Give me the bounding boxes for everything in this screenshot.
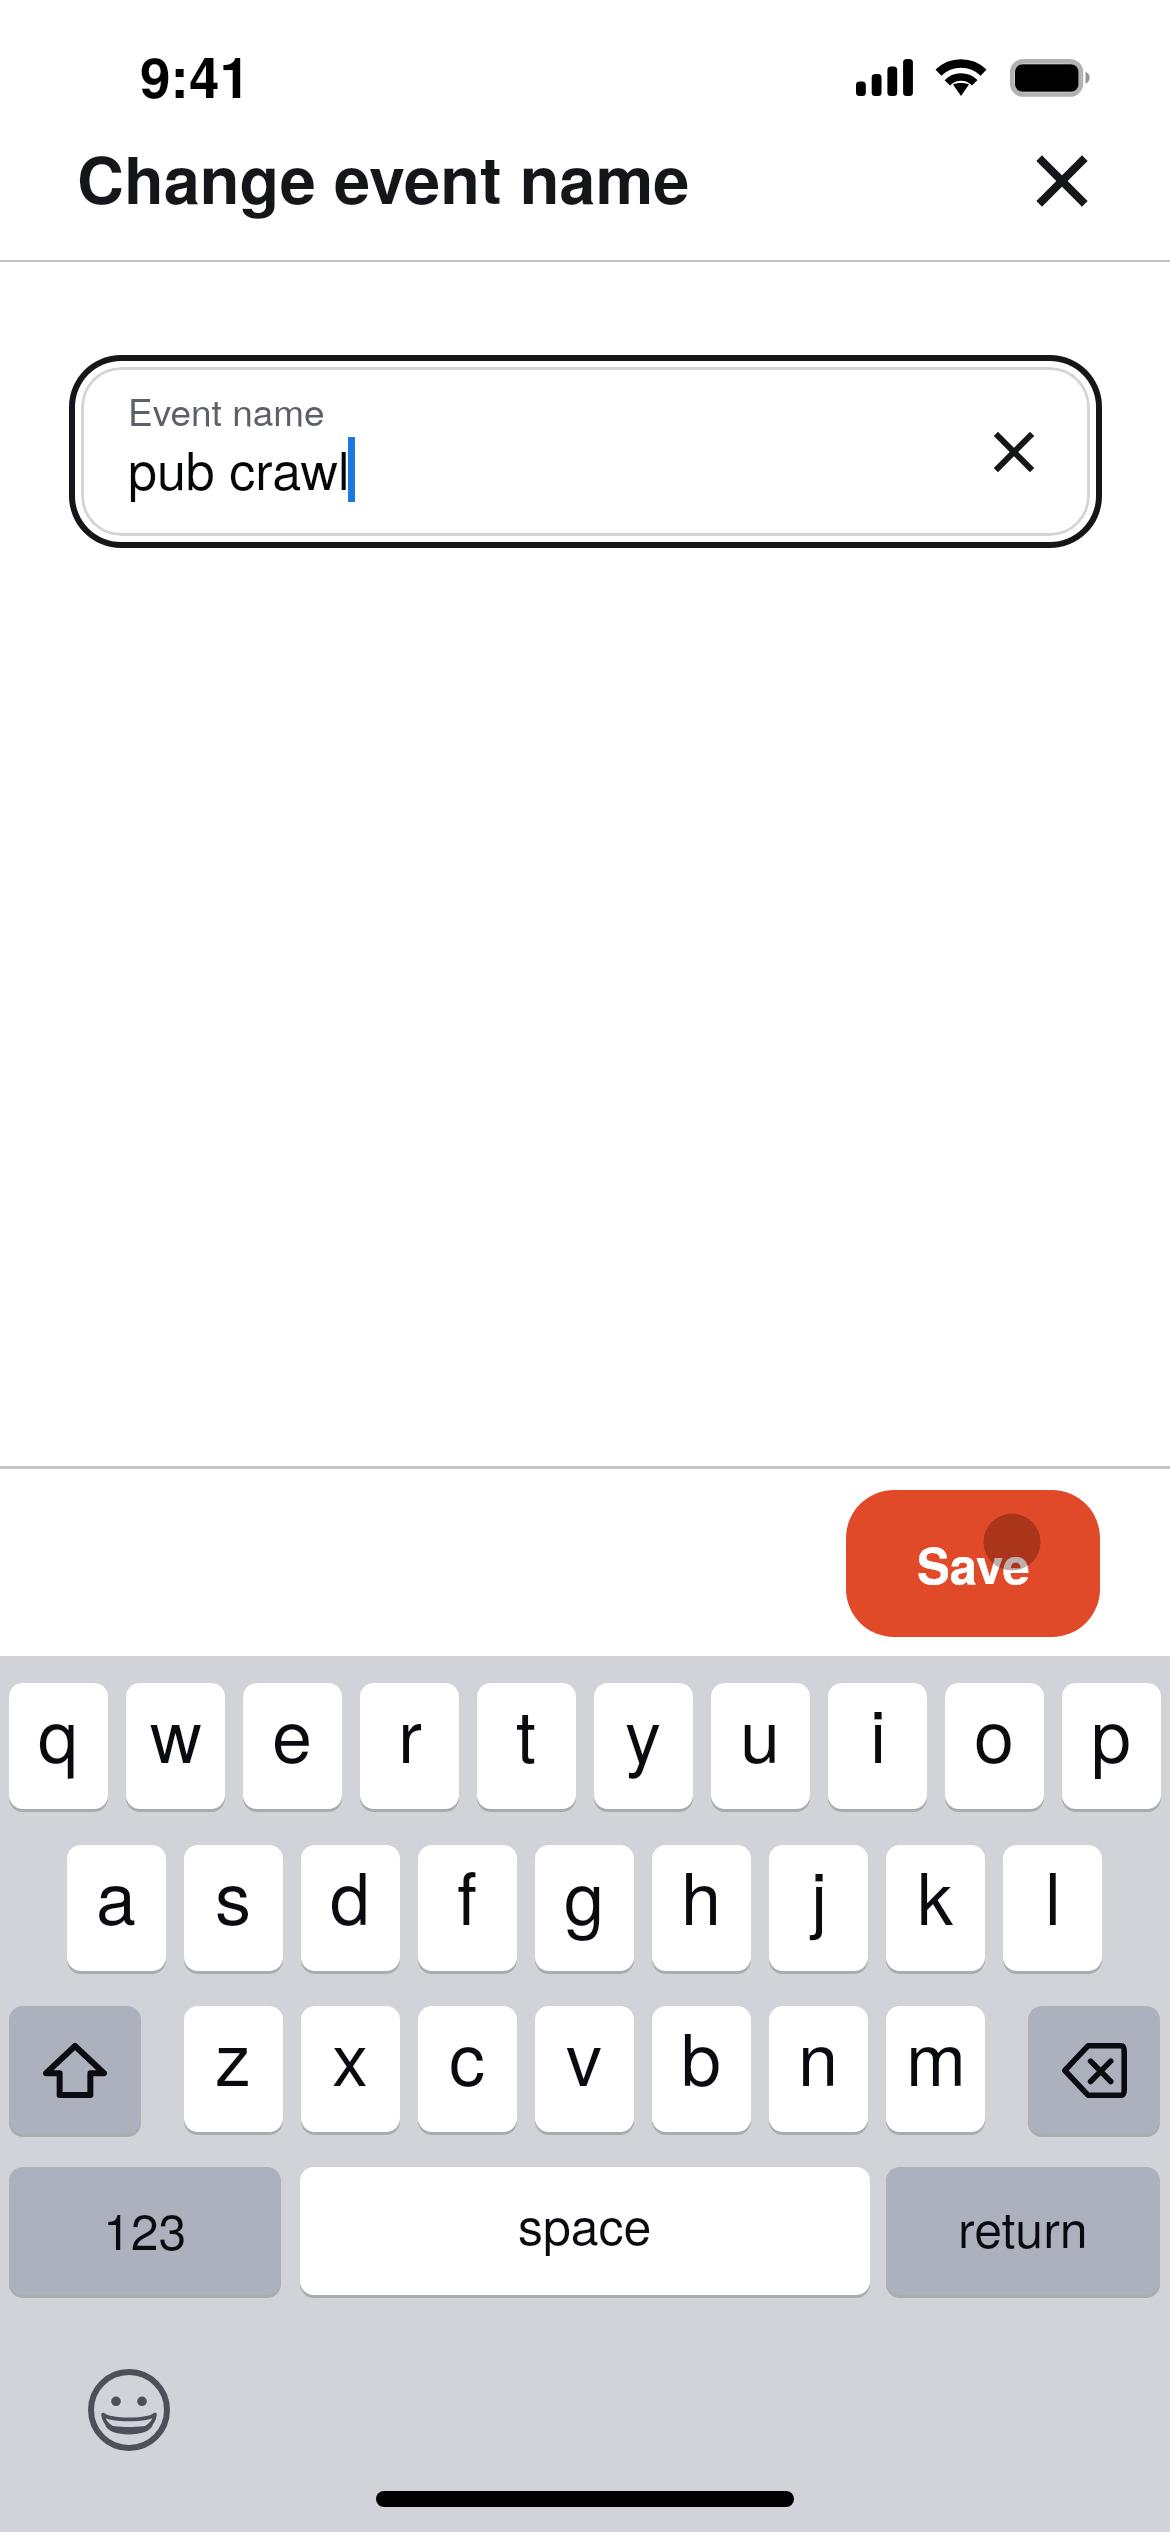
- button[interactable]: r: [360, 1683, 459, 1809]
- staticText: return: [958, 2191, 1088, 2263]
- staticText: b: [681, 2006, 722, 2106]
- button[interactable]: v: [535, 2006, 634, 2132]
- button[interactable]: f: [418, 1845, 517, 1971]
- button[interactable]: Save: [846, 1490, 1100, 1637]
- staticText: u: [740, 1683, 781, 1783]
- button[interactable]: o: [945, 1683, 1044, 1809]
- button[interactable]: l: [1003, 1845, 1102, 1971]
- staticText: h: [681, 1845, 722, 1945]
- button[interactable]: Clear text: [974, 412, 1054, 492]
- staticText: l: [1045, 1845, 1061, 1945]
- button[interactable]: Emoji keyboard: [84, 2365, 173, 2454]
- staticText: r: [398, 1683, 422, 1783]
- button[interactable]: b: [652, 2006, 751, 2132]
- button[interactable]: c: [418, 2006, 517, 2132]
- button[interactable]: k: [886, 1845, 985, 1971]
- button[interactable]: p: [1062, 1683, 1161, 1809]
- button[interactable]: d: [301, 1845, 400, 1971]
- button[interactable]: q: [9, 1683, 108, 1809]
- button[interactable]: g: [535, 1845, 634, 1971]
- button[interactable]: s: [184, 1845, 283, 1971]
- staticText: q: [38, 1683, 79, 1783]
- button[interactable]: Shift: [9, 2006, 141, 2134]
- staticText: d: [330, 1845, 371, 1945]
- button[interactable]: u: [711, 1683, 810, 1809]
- button[interactable]: j: [769, 1845, 868, 1971]
- staticText: g: [564, 1845, 605, 1945]
- staticText: Save: [917, 1529, 1030, 1599]
- button[interactable]: w: [126, 1683, 225, 1809]
- button[interactable]: z: [184, 2006, 283, 2132]
- staticText: o: [974, 1683, 1015, 1783]
- button[interactable]: y: [594, 1683, 693, 1809]
- button[interactable]: i: [828, 1683, 927, 1809]
- staticText: e: [272, 1683, 313, 1783]
- button[interactable]: n: [769, 2006, 868, 2132]
- staticText: j: [811, 1845, 827, 1945]
- staticText: Change event name: [77, 131, 690, 224]
- staticText: x: [332, 2006, 369, 2106]
- staticText: y: [625, 1683, 662, 1783]
- staticText: f: [457, 1845, 478, 1945]
- staticText: i: [870, 1683, 886, 1783]
- staticText: c: [449, 2006, 486, 2106]
- button[interactable]: a: [67, 1845, 166, 1971]
- staticText: s: [215, 1845, 252, 1945]
- staticText: m: [906, 2006, 966, 2106]
- button[interactable]: m: [886, 2006, 985, 2132]
- button[interactable]: 123: [9, 2167, 281, 2295]
- button[interactable]: x: [301, 2006, 400, 2132]
- button[interactable]: Event name: [81, 367, 1090, 536]
- button[interactable]: return: [886, 2167, 1160, 2295]
- staticText: w: [150, 1683, 202, 1783]
- staticText: a: [96, 1845, 137, 1945]
- staticText: Event name: [128, 384, 325, 437]
- staticText: n: [798, 2006, 839, 2106]
- staticText: v: [566, 2006, 603, 2106]
- staticText: k: [917, 1845, 954, 1945]
- staticText: pub crawl: [128, 430, 350, 504]
- button[interactable]: Backspace: [1028, 2006, 1160, 2134]
- staticText: t: [516, 1683, 537, 1783]
- staticText: p: [1091, 1683, 1132, 1783]
- staticText: z: [215, 2006, 252, 2106]
- staticText: space: [518, 2188, 652, 2260]
- button[interactable]: h: [652, 1845, 751, 1971]
- staticText: 123: [103, 2193, 187, 2265]
- button[interactable]: Close: [1017, 136, 1107, 226]
- button[interactable]: e: [243, 1683, 342, 1809]
- button[interactable]: space: [300, 2167, 870, 2295]
- button[interactable]: t: [477, 1683, 576, 1809]
- staticText: 9:41: [140, 36, 251, 115]
